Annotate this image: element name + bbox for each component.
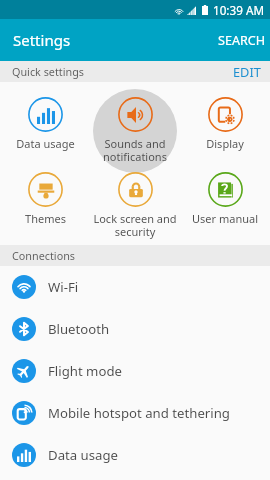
staticText: 10:39 AM <box>213 2 264 18</box>
button[interactable]: Data usage <box>0 82 90 151</box>
staticText: Settings <box>13 30 71 50</box>
button[interactable]: Data usage <box>0 434 270 476</box>
staticText: Connections <box>12 248 76 263</box>
button[interactable]: Display <box>180 82 270 151</box>
button[interactable]: Wi-Fi <box>0 266 270 308</box>
button[interactable]: Sounds and notifications <box>90 82 180 164</box>
button[interactable]: Themes <box>0 157 90 226</box>
staticText: EDIT <box>233 63 261 80</box>
staticText: Flight mode <box>48 362 122 380</box>
staticText: User manual <box>192 211 258 226</box>
staticText: Bluetooth <box>48 320 110 338</box>
staticText: Data usage <box>16 136 75 151</box>
button[interactable]: Lock screen and security <box>90 157 180 239</box>
staticText: Sounds and notifications <box>103 136 167 164</box>
staticText: Mobile hotspot and tethering <box>48 404 230 422</box>
staticText: Display <box>206 136 244 151</box>
staticText: Quick settings <box>12 64 84 79</box>
staticText: Data usage <box>48 446 119 464</box>
staticText: Wi-Fi <box>48 278 79 296</box>
button[interactable]: SEARCH <box>208 19 270 61</box>
staticText: Lock screen and security <box>93 211 177 239</box>
staticText: Themes <box>25 211 66 226</box>
button[interactable]: EDIT <box>221 61 270 82</box>
button[interactable]: Bluetooth <box>0 308 270 350</box>
staticText: SEARCH <box>218 32 266 49</box>
button[interactable]: Mobile hotspot and tethering <box>0 392 270 434</box>
button[interactable]: User manual <box>180 157 270 226</box>
button[interactable]: Flight mode <box>0 350 270 392</box>
